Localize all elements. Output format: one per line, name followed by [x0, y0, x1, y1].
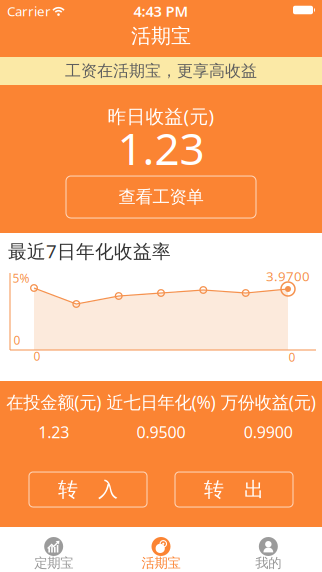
- button[interactable]: 工资在活期宝，更享高收益: [0, 57, 322, 85]
- staticText: 5%: [12, 270, 29, 286]
- staticText: Carrier: [7, 2, 51, 20]
- staticText: 工资在活期宝，更享高收益: [65, 61, 257, 81]
- staticText: 活期宝: [131, 24, 191, 48]
- staticText: 在投金额(元): [6, 390, 101, 413]
- staticText: 0: [13, 332, 20, 348]
- staticText: 1.23: [38, 421, 69, 443]
- staticText: 0: [288, 349, 295, 365]
- staticText: 万份收益(元): [221, 390, 316, 413]
- staticText: 查看工资单: [118, 186, 203, 208]
- staticText: 昨日收益(元): [107, 104, 214, 128]
- button[interactable]: 转 入: [29, 472, 147, 507]
- staticText: 我的: [255, 555, 281, 571]
- staticText: 定期宝: [34, 555, 73, 571]
- button[interactable]: 活期宝: [107, 527, 215, 572]
- button[interactable]: 查看工资单: [66, 176, 256, 218]
- staticText: 3.9700: [266, 267, 310, 285]
- staticText: 转 出: [204, 477, 264, 502]
- button[interactable]: 定期宝: [0, 527, 107, 572]
- staticText: 最近7日年化收益率: [8, 239, 171, 263]
- staticText: 1.23: [117, 119, 204, 177]
- button[interactable]: 转 出: [175, 472, 293, 507]
- staticText: 0.9900: [244, 421, 293, 443]
- button[interactable]: 我的: [215, 527, 322, 572]
- staticText: 转 入: [58, 477, 118, 502]
- staticText: 近七日年化(%): [106, 390, 215, 413]
- staticText: 0.9500: [136, 421, 185, 443]
- staticText: 0: [33, 348, 40, 364]
- staticText: 4:43 PM: [133, 1, 188, 21]
- staticText: 活期宝: [141, 555, 180, 571]
